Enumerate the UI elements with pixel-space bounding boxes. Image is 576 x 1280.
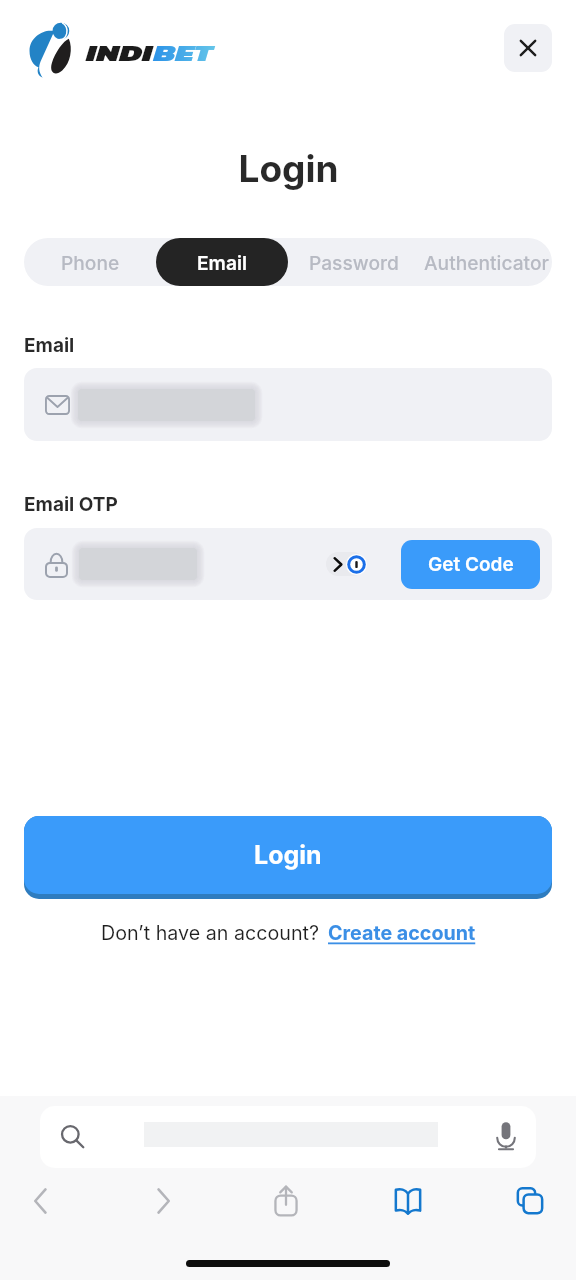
staticText: Login [254, 840, 322, 870]
staticText: Password [309, 251, 399, 274]
staticText: Get Code [428, 553, 514, 576]
button[interactable]: Get Code [401, 540, 540, 589]
staticText: Email [24, 334, 75, 357]
button[interactable]: Autofill password [24, 528, 552, 600]
staticText: Don’t have an account? [101, 921, 320, 945]
staticText: Email [197, 251, 247, 274]
staticText: Email OTP [24, 493, 118, 516]
button[interactable]: Authenticator [420, 238, 552, 286]
staticText: BET [153, 36, 214, 70]
staticText: Phone [61, 251, 120, 274]
button[interactable]: Autofill password [326, 550, 367, 578]
staticText: Create account [328, 921, 476, 945]
button[interactable]: Share [264, 1179, 308, 1223]
button[interactable]: Address and search [40, 1106, 536, 1168]
button[interactable]: Forward [141, 1179, 185, 1223]
button[interactable]: Phone [24, 238, 156, 286]
button[interactable]: Create account [328, 921, 476, 945]
staticText: Login [238, 146, 339, 191]
button[interactable]: Tabs [508, 1179, 552, 1223]
button[interactable]: Bookmarks [386, 1179, 430, 1223]
button[interactable]: Back [19, 1179, 63, 1223]
button[interactable]: Password [288, 238, 420, 286]
button[interactable] [24, 368, 552, 441]
staticText: INDI [86, 36, 153, 70]
button[interactable]: Login [24, 816, 552, 894]
button[interactable]: Email [156, 238, 288, 286]
staticText: Authenticator [424, 251, 549, 274]
button[interactable]: Close [504, 24, 552, 72]
